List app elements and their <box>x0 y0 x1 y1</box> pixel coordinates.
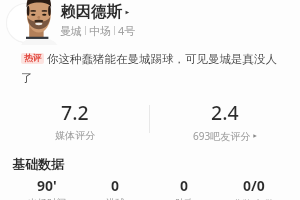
button[interactable]: 7.2 <box>0 99 150 142</box>
staticText: 出场时间 <box>28 197 66 200</box>
button[interactable]: 0 <box>150 176 219 200</box>
staticText: 90' <box>37 176 57 195</box>
button[interactable]: 0 <box>81 176 150 200</box>
button[interactable]: 曼城 <box>60 23 136 38</box>
staticText: 7.2 <box>61 99 89 126</box>
staticText: 4号 <box>118 23 136 38</box>
staticText: 693吧友评分 <box>193 129 251 143</box>
staticText: 热评 <box>24 53 42 64</box>
staticText: 0/0 <box>243 176 265 195</box>
button[interactable]: 0/0 <box>219 176 288 200</box>
button[interactable]: [热评]你这种蠢猪能在曼城踢球，可见曼城是真没人了 <box>21 52 281 86</box>
button[interactable]: 赖因德斯 <box>60 2 131 22</box>
staticText: 助攻 <box>175 197 194 200</box>
button[interactable]: 2.4 <box>150 99 300 143</box>
staticText: 中场 <box>89 24 111 38</box>
staticText: 赖因德斯 <box>60 2 122 22</box>
staticText: 2.4 <box>211 99 239 126</box>
staticText: [热评]你这种蠢猪能在曼城踢球，可见曼城是真没人了 <box>21 52 281 86</box>
staticText: 曼城 <box>60 24 82 38</box>
button[interactable]: 90' <box>12 176 81 200</box>
staticText: 媒体评分 <box>55 129 95 142</box>
staticText: 基础数据 <box>12 156 64 172</box>
staticText: 0 <box>180 176 189 195</box>
staticText: 进球 <box>106 197 125 200</box>
staticText: 0 <box>111 176 120 195</box>
staticText: 黄牌/红牌 <box>233 197 275 200</box>
button[interactable]: Player avatar <box>6 0 46 44</box>
